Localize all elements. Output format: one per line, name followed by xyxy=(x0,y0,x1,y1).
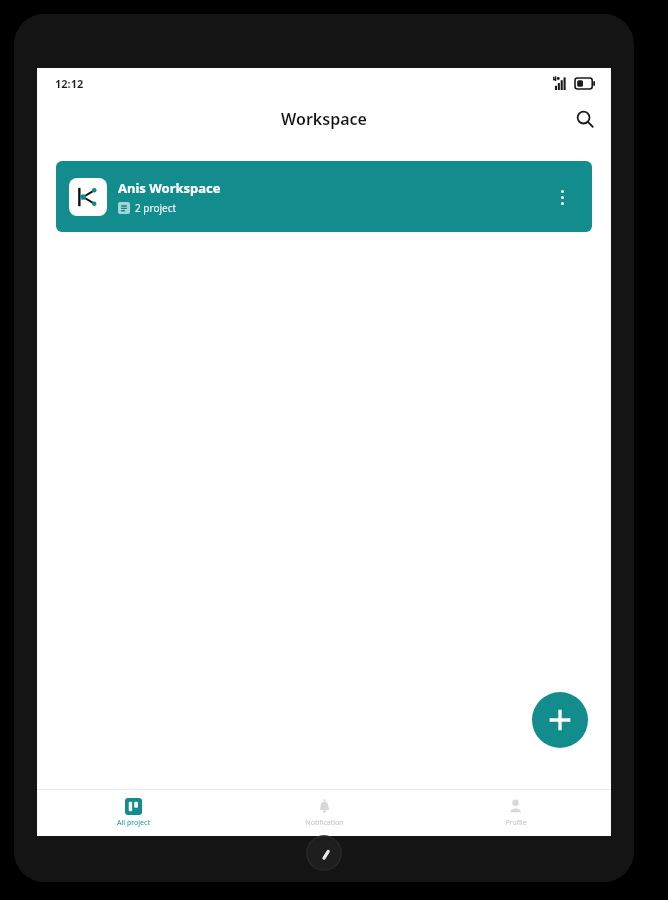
staticText: Notification xyxy=(305,818,344,828)
button[interactable]: Search xyxy=(565,99,605,139)
staticText: 12:12 xyxy=(55,76,84,91)
staticText: All project xyxy=(117,818,150,828)
button[interactable]: Add workspace xyxy=(532,692,588,748)
button[interactable]: Profile xyxy=(420,790,611,836)
button[interactable]: Anis Workspace xyxy=(56,161,592,232)
button[interactable]: More options xyxy=(545,180,579,214)
button[interactable]: All project xyxy=(37,790,229,836)
staticText: Anis Workspace xyxy=(118,179,221,197)
button[interactable]: Notification xyxy=(229,790,420,836)
staticText: 2 project xyxy=(135,201,177,215)
staticText: Workspace xyxy=(281,108,367,130)
staticText: Profile xyxy=(505,818,527,828)
